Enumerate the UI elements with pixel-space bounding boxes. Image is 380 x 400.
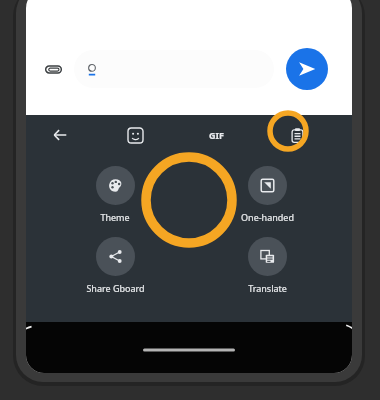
button[interactable]: Theme (76, 166, 154, 223)
staticText: Theme (100, 211, 130, 223)
staticText: GIF (209, 129, 224, 141)
staticText: Share Gboard (86, 282, 145, 294)
button[interactable]: Translate (228, 237, 306, 294)
button[interactable]: Clipboard (281, 119, 313, 151)
button[interactable] (74, 50, 274, 88)
staticText: Translate (248, 282, 287, 294)
button[interactable]: GIF (200, 119, 232, 151)
button[interactable]: Send (286, 48, 328, 90)
button[interactable]: Back (44, 119, 76, 151)
button[interactable]: One-handed (228, 166, 306, 223)
button[interactable]: Share Gboard (76, 237, 154, 294)
staticText: One-handed (241, 211, 294, 223)
button[interactable]: Stickers (119, 119, 151, 151)
button[interactable]: Attach (36, 52, 70, 86)
